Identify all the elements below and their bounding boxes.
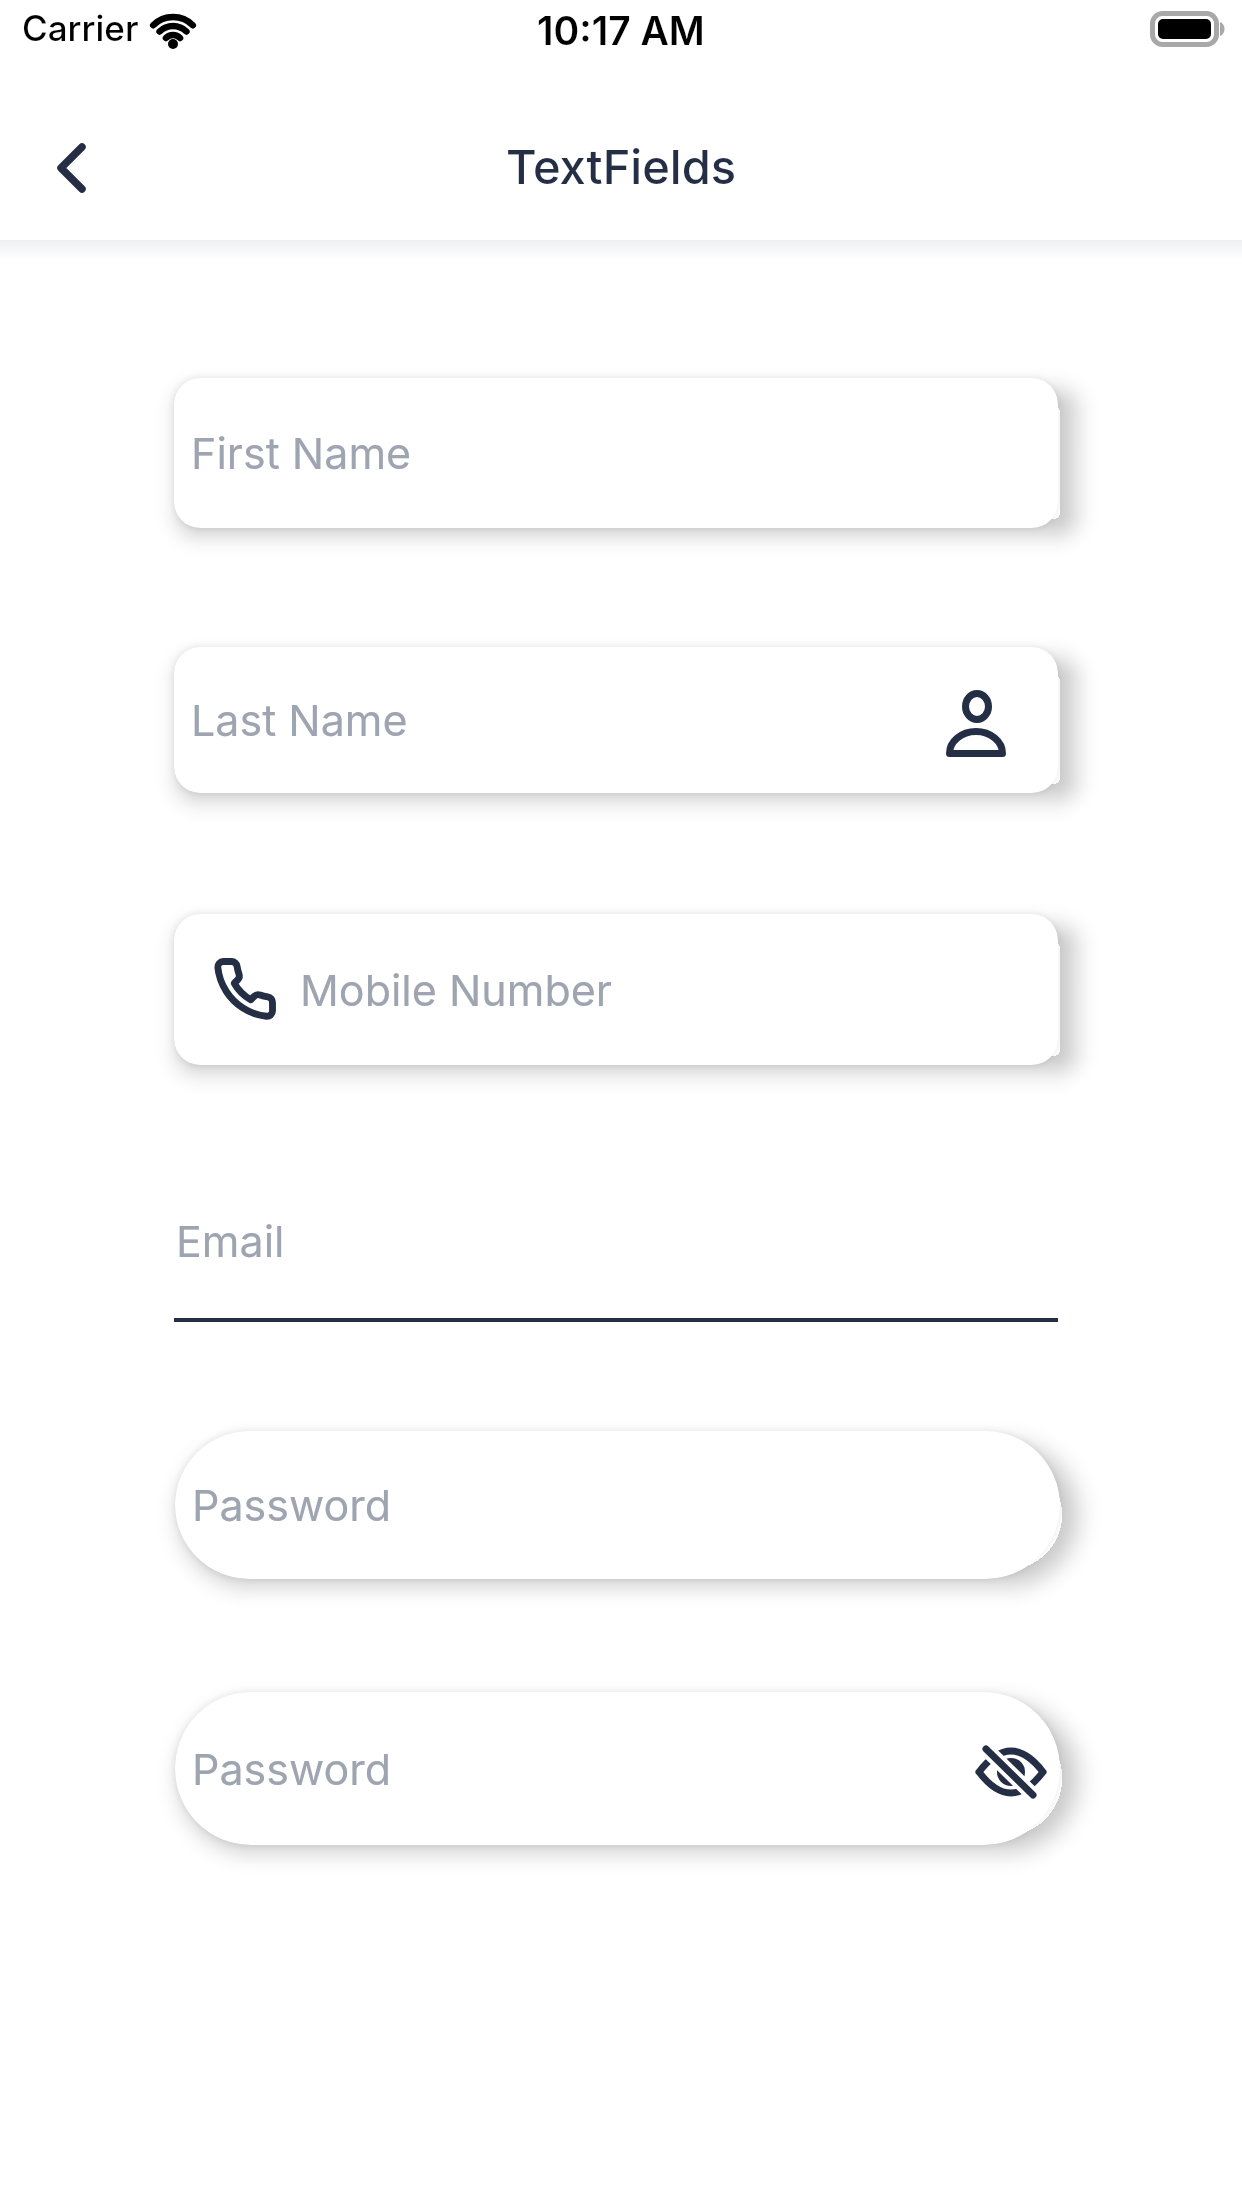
staticText: Last Name bbox=[191, 694, 408, 746]
button[interactable]: Mobile Number bbox=[174, 914, 1058, 1065]
staticText: 10:17 AM bbox=[537, 7, 705, 54]
staticText: TextFields bbox=[506, 138, 737, 195]
staticText: Password bbox=[192, 1743, 392, 1795]
staticText: Password bbox=[192, 1479, 392, 1531]
button[interactable]: First Name bbox=[174, 378, 1058, 528]
button[interactable] bbox=[40, 130, 104, 206]
button[interactable]: Password bbox=[175, 1692, 1060, 1845]
button[interactable]: Password bbox=[175, 1431, 1060, 1579]
staticText: Mobile Number bbox=[300, 964, 613, 1016]
button[interactable]: Last Name bbox=[174, 647, 1058, 793]
staticText: Email bbox=[176, 1215, 285, 1267]
staticText: Carrier bbox=[22, 7, 139, 49]
staticText: First Name bbox=[191, 427, 412, 479]
button[interactable]: Email bbox=[174, 1180, 1058, 1322]
